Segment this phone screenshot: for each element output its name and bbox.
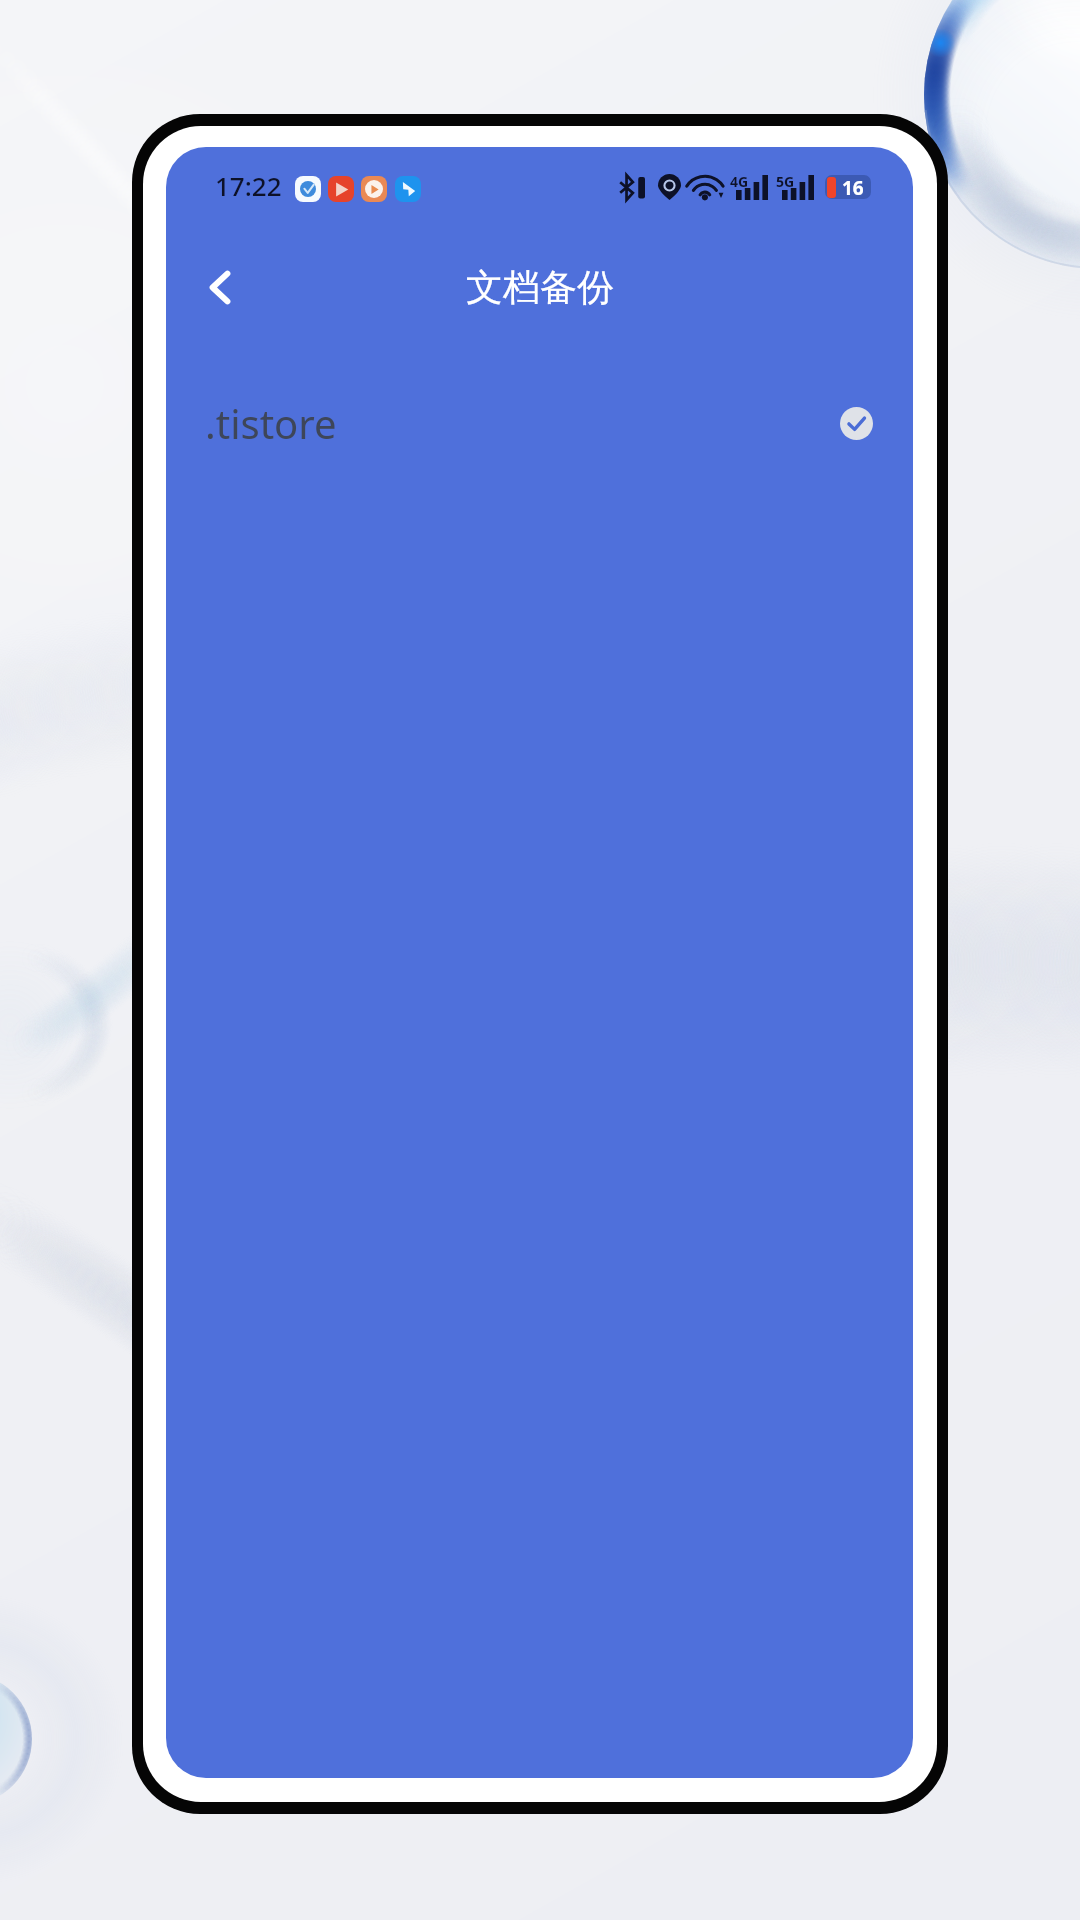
button[interactable]: Selected, toggle selection (840, 407, 873, 440)
button[interactable]: Back (188, 255, 252, 319)
staticText: 17:22 (215, 168, 282, 203)
staticText: 4G (730, 172, 749, 191)
button[interactable]: .tistore (166, 370, 913, 470)
staticText: 5G (776, 172, 795, 191)
staticText: 16 (842, 175, 864, 199)
staticText: 文档备份 (466, 264, 614, 311)
staticText: .tistore (205, 396, 337, 450)
